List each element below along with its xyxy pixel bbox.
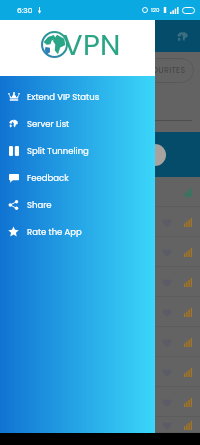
button[interactable]: Split Tunneling [0, 137, 155, 164]
staticText: Server List [27, 118, 70, 130]
staticText: 6:30 [17, 5, 33, 15]
button[interactable] [0, 267, 200, 297]
button[interactable] [0, 387, 200, 417]
button[interactable] [0, 177, 200, 207]
staticText: Share [27, 199, 52, 211]
button[interactable] [0, 327, 200, 357]
button[interactable] [0, 297, 200, 327]
staticText: Feedback [27, 172, 69, 184]
button[interactable] [0, 357, 200, 387]
staticText: VPN [63, 25, 121, 66]
button[interactable] [0, 417, 200, 433]
button[interactable]: Server List [0, 110, 155, 137]
staticText: Rate the App [27, 226, 82, 238]
staticText: FAVOURITES [136, 65, 186, 76]
button[interactable]: Feedback [0, 164, 155, 191]
staticText: Split Tunneling [27, 145, 89, 157]
button[interactable] [0, 207, 200, 237]
button[interactable] [0, 237, 200, 267]
button[interactable]: Rate the App [0, 218, 155, 245]
button[interactable]: FAVOURITES [127, 58, 194, 83]
staticText: Extend VIP Status [27, 91, 100, 103]
button[interactable] [144, 144, 166, 166]
button[interactable]: ALL SERVERS [6, 58, 73, 83]
button[interactable]: Share [0, 191, 155, 218]
staticText: 120 [151, 6, 160, 14]
button[interactable]: Extend VIP Status [0, 83, 155, 110]
button[interactable]: Server list [171, 25, 193, 47]
